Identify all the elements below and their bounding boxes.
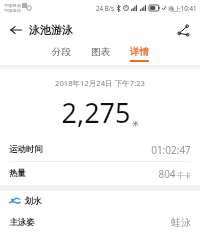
button[interactable]: 运动时间 bbox=[0, 138, 200, 161]
staticText: 划水 bbox=[24, 196, 42, 207]
staticText: 24 B/s bbox=[96, 4, 114, 12]
staticText: 2018年12月24日 下午7:23 bbox=[55, 78, 145, 88]
button[interactable]: 详情 bbox=[124, 45, 155, 63]
button[interactable]: 主泳姿 bbox=[0, 211, 200, 234]
staticText: 主泳姿 bbox=[9, 217, 35, 228]
staticText: 千卡 bbox=[177, 171, 191, 180]
staticText: 中国移动 bbox=[4, 3, 21, 8]
staticText: 蛙泳 bbox=[171, 216, 191, 229]
staticText: 米 bbox=[132, 120, 139, 128]
staticText: 图表 bbox=[91, 46, 110, 58]
button[interactable]: 分段 bbox=[46, 45, 77, 63]
staticText: 804 bbox=[158, 167, 176, 181]
staticText: 2,275 bbox=[61, 94, 131, 131]
staticText: 晚上10:41 bbox=[168, 4, 197, 12]
button[interactable]: 热量 bbox=[0, 162, 200, 185]
button[interactable]: Share bbox=[172, 19, 194, 41]
staticText: 泳池游泳 bbox=[29, 23, 73, 37]
staticText: 中国电信 bbox=[4, 8, 21, 13]
staticText: 运动时间 bbox=[9, 144, 43, 155]
button[interactable]: Back bbox=[5, 19, 27, 41]
staticText: 01:02:47 bbox=[151, 143, 191, 157]
staticText: 分段 bbox=[52, 46, 71, 58]
staticText: 详情 bbox=[130, 46, 149, 58]
button[interactable]: 图表 bbox=[85, 45, 116, 63]
staticText: 热量 bbox=[9, 168, 26, 179]
